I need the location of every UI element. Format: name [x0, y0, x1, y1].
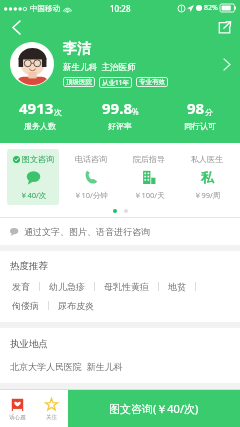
- staticText: 中国移动: [30, 4, 60, 13]
- button[interactable]: 佝偻病: [10, 300, 41, 311]
- staticText: 图文咨询(￥40/次): [109, 401, 199, 416]
- staticText: 99.8: [102, 98, 132, 118]
- staticText: 98: [187, 98, 205, 118]
- staticText: 好评率: [108, 121, 132, 131]
- staticText: 次: [54, 107, 62, 117]
- staticText: 幼儿急疹: [49, 281, 85, 292]
- staticText: 10:28: [110, 3, 131, 14]
- staticText: 北京大学人民医院 新生儿科: [10, 360, 123, 372]
- staticText: 关注: [46, 414, 57, 421]
- staticText: 服务人数: [24, 121, 56, 131]
- button[interactable]: 图文咨询: [7, 149, 59, 205]
- staticText: ￥10/分钟: [74, 190, 108, 200]
- staticText: 院后指导: [133, 154, 165, 164]
- staticText: 电话咨询: [75, 154, 107, 164]
- button[interactable]: 母乳性黄疸: [102, 281, 151, 292]
- staticText: 地贫: [168, 281, 186, 292]
- staticText: 李洁: [63, 40, 91, 58]
- button[interactable]: 关注: [34, 390, 68, 427]
- staticText: 同行认可: [184, 121, 216, 131]
- button[interactable]: 发育: [10, 281, 32, 292]
- button[interactable]: 幼儿急疹: [47, 281, 87, 292]
- button[interactable]: 话心愿: [0, 390, 34, 427]
- button[interactable]: Share: [214, 17, 234, 37]
- button[interactable]: 图文咨询(￥40/次): [68, 390, 240, 427]
- staticText: 私人医生: [191, 154, 223, 164]
- button[interactable]: Back: [6, 17, 26, 37]
- staticText: 热度推荐: [10, 260, 48, 272]
- button[interactable]: 通过文字、图片、语音进行咨询: [0, 218, 240, 245]
- button[interactable]: 私人医生: [181, 149, 233, 205]
- staticText: 佝偻病: [12, 300, 39, 311]
- staticText: ￥40/次: [20, 190, 47, 200]
- staticText: 私: [201, 169, 214, 185]
- staticText: 图文咨询: [22, 154, 54, 164]
- staticText: 母乳性黄疸: [104, 281, 149, 292]
- staticText: 新生儿科 主治医师: [63, 61, 136, 73]
- button[interactable]: 尿布皮炎: [56, 300, 96, 311]
- button[interactable]: 地贫: [166, 281, 188, 292]
- staticText: 执业地点: [10, 338, 48, 350]
- staticText: 分: [205, 107, 213, 117]
- staticText: 4913: [19, 98, 54, 118]
- staticText: 尿布皮炎: [58, 300, 94, 311]
- staticText: 顶级医院: [66, 78, 92, 86]
- staticText: 专业有效: [139, 78, 165, 86]
- staticText: ￥100/天: [134, 190, 165, 200]
- staticText: ￥99/周: [194, 190, 221, 200]
- staticText: 从业11年: [102, 78, 129, 87]
- staticText: %: [132, 106, 139, 117]
- staticText: 通过文字、图片、语音进行咨询: [24, 226, 150, 237]
- staticText: 82%: [204, 3, 218, 13]
- staticText: 话心愿: [9, 414, 26, 421]
- button[interactable]: 院后指导: [123, 149, 175, 205]
- button[interactable]: 电话咨询: [65, 149, 117, 205]
- staticText: 发育: [12, 281, 30, 292]
